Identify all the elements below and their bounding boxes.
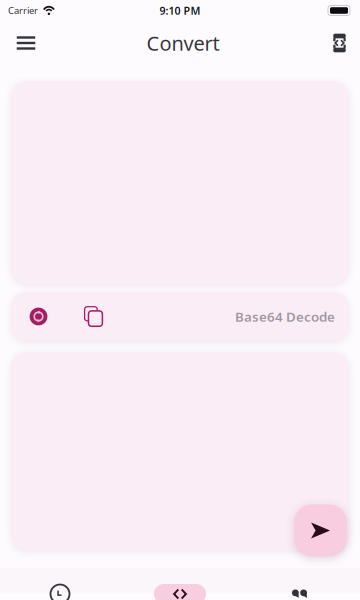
button[interactable]: Send [294, 504, 346, 556]
button[interactable]: Quotes [240, 584, 360, 600]
button[interactable]: Swap conversion direction [16, 294, 60, 338]
button[interactable]: Copy [71, 294, 115, 338]
staticText: 9:10 PM [159, 3, 200, 18]
button[interactable]: History [0, 584, 120, 600]
button[interactable]: Code view [318, 21, 360, 65]
button[interactable]: Convert [120, 584, 240, 600]
staticText: Base64 Decode [235, 308, 335, 325]
button[interactable]: Menu [4, 21, 48, 65]
staticText: Carrier [8, 4, 38, 17]
staticText: Convert [146, 30, 219, 56]
